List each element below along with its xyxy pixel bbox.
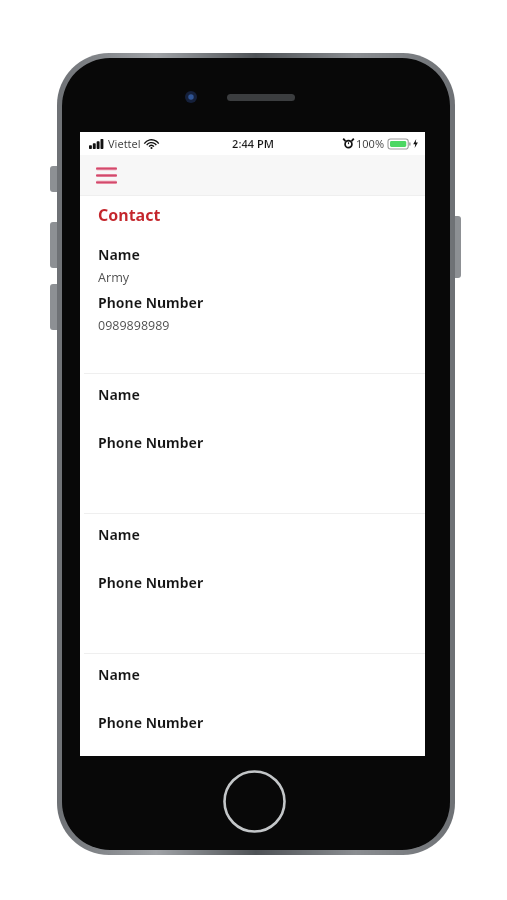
staticText: Army: [98, 269, 130, 286]
staticText: 0989898989: [98, 317, 170, 334]
staticText: Phone Number: [98, 433, 204, 452]
staticText: Name: [98, 245, 140, 264]
staticText: Contact: [98, 204, 161, 226]
staticText: Phone Number: [98, 713, 204, 732]
staticText: Phone Number: [98, 293, 204, 312]
staticText: Viettel: [108, 136, 141, 151]
staticText: Name: [98, 665, 140, 684]
button[interactable]: Name: [80, 374, 425, 513]
button[interactable]: Open navigation menu: [91, 161, 121, 189]
staticText: Name: [98, 525, 140, 544]
staticText: Phone Number: [98, 573, 204, 592]
staticText: Name: [98, 385, 140, 404]
staticText: 100%: [356, 136, 385, 151]
button[interactable]: Name: [80, 234, 425, 373]
button[interactable]: Name: [80, 654, 425, 756]
button[interactable]: Name: [80, 514, 425, 653]
staticText: 2:44 PM: [232, 136, 274, 151]
